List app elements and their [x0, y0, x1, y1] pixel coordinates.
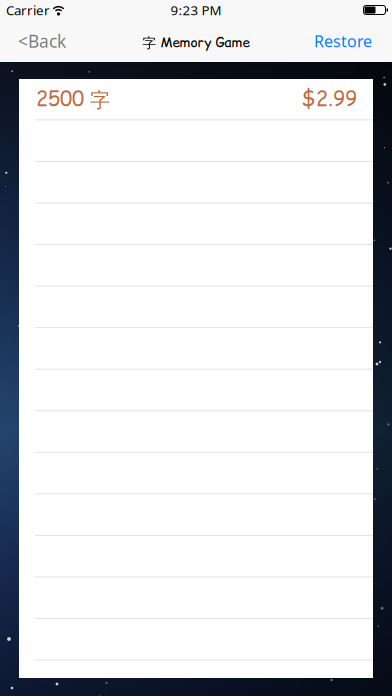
staticText: <Back	[18, 29, 66, 52]
staticText: $2.99	[302, 85, 357, 113]
button[interactable]: <Back	[0, 29, 66, 52]
staticText: Carrier	[6, 1, 50, 19]
staticText: 2500 字	[36, 85, 110, 113]
button[interactable]: 2500 字	[19, 79, 373, 120]
staticText: 字 Memory Game	[142, 33, 249, 52]
staticText: Restore	[314, 30, 372, 52]
staticText: 9:23 PM	[170, 1, 221, 19]
button[interactable]: Restore	[314, 30, 392, 52]
